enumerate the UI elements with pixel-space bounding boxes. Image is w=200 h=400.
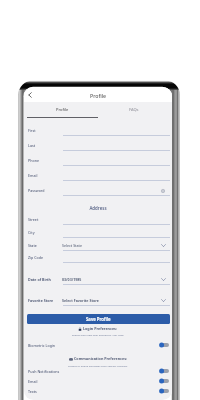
button[interactable]: Email xyxy=(24,377,172,385)
staticText: Push Notifications xyxy=(28,369,60,374)
staticText: Login Preferences: xyxy=(83,326,118,331)
button[interactable]: Show password xyxy=(160,188,166,194)
staticText: Address xyxy=(24,205,172,211)
button[interactable]: Expand Date of Birth xyxy=(160,276,167,283)
staticText: Street xyxy=(28,217,39,222)
staticText: Communication Preferences: xyxy=(74,356,128,361)
staticText: First xyxy=(28,128,36,133)
staticText: Enable auto login with biometrics / pin … xyxy=(24,333,172,336)
staticText: Finalize or queue messages from specific… xyxy=(24,364,172,367)
button[interactable]: Biometric Login xyxy=(24,341,172,349)
staticText: Profile xyxy=(56,107,69,112)
staticText: 03/03/1985 xyxy=(62,277,82,282)
staticText: Email xyxy=(28,379,38,384)
button[interactable]: Back xyxy=(25,90,35,100)
button[interactable]: Texts xyxy=(24,387,172,395)
staticText: Profile xyxy=(90,92,107,99)
staticText: Save Profile xyxy=(86,316,111,322)
staticText: Biometric Login xyxy=(28,343,56,348)
button[interactable]: FAQs xyxy=(98,102,170,118)
button[interactable]: Expand State xyxy=(160,242,167,249)
button[interactable]: Profile xyxy=(27,102,98,118)
staticText: Phone xyxy=(28,158,39,163)
staticText: Select State xyxy=(62,243,82,248)
staticText: FAQs xyxy=(129,107,139,112)
staticText: Email xyxy=(28,173,38,178)
staticText: Last xyxy=(28,143,36,148)
staticText: City xyxy=(28,230,35,235)
staticText: Texts xyxy=(28,389,37,394)
button[interactable]: Push Notifications xyxy=(24,367,172,375)
staticText: Select Favorite Store xyxy=(62,298,99,303)
staticText: Password xyxy=(28,188,45,193)
button[interactable]: Expand Favorite Store xyxy=(160,297,167,304)
staticText: State xyxy=(28,243,37,248)
staticText: Favorite Store xyxy=(28,298,54,303)
button[interactable]: Save Profile xyxy=(27,314,170,324)
staticText: Date of Birth xyxy=(28,277,51,282)
staticText: Zip Code xyxy=(28,255,43,260)
